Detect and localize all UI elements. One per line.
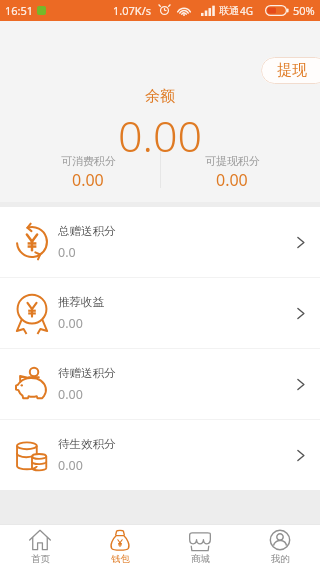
staticText: 50% [293, 3, 315, 18]
staticText: 推荐收益 [58, 295, 104, 309]
staticText: 钱包 [111, 553, 130, 565]
button[interactable]: 总赠送积分 [0, 207, 320, 277]
button[interactable]: 提现 [261, 57, 320, 84]
staticText: 4G [240, 4, 253, 18]
staticText: 待赠送积分 [58, 366, 116, 380]
button[interactable]: 推荐收益 [0, 278, 320, 348]
staticText: 总赠送积分 [58, 224, 116, 238]
staticText: 提现 [277, 61, 307, 80]
button[interactable]: 我的 [240, 525, 320, 569]
staticText: 首页 [31, 553, 50, 565]
staticText: 0.00 [72, 169, 104, 191]
staticText: 我的 [271, 553, 290, 565]
staticText: 商城 [191, 553, 210, 565]
staticText: 16:51 [5, 3, 34, 18]
button[interactable]: 待赠送积分 [0, 349, 320, 419]
staticText: 0.00 [58, 386, 83, 403]
button[interactable]: 商城 [160, 525, 240, 569]
staticText: 0.00 [118, 106, 203, 165]
staticText: 1.07K/s [113, 3, 151, 18]
staticText: 可消费积分 [61, 154, 116, 168]
staticText: 余额 [145, 87, 175, 106]
button[interactable]: 待生效积分 [0, 420, 320, 490]
button[interactable]: 钱包 [80, 525, 160, 569]
staticText: 可提现积分 [205, 154, 260, 168]
staticText: 0.00 [58, 315, 83, 332]
staticText: 0.00 [58, 457, 83, 474]
staticText: 0.00 [216, 169, 248, 191]
staticText: 联通 [219, 4, 239, 17]
staticText: 0.0 [58, 244, 76, 261]
button[interactable]: 首页 [0, 525, 80, 569]
staticText: 待生效积分 [58, 437, 116, 451]
